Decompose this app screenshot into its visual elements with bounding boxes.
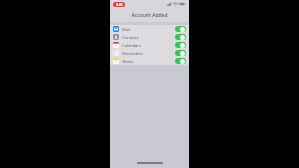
staticText: Account Added [131, 12, 168, 19]
button[interactable]: Contacts [110, 33, 189, 41]
button[interactable]: Notes [110, 57, 189, 65]
button[interactable]: Reminders [110, 49, 189, 57]
button[interactable]: Toggle on [175, 58, 186, 64]
staticText: Calendars [122, 43, 141, 48]
button[interactable]: Toggle on [175, 50, 186, 56]
staticText: Notes [122, 59, 134, 64]
button[interactable]: Recording timer [113, 2, 125, 7]
button[interactable]: Mail [110, 25, 189, 33]
button[interactable]: Toggle on [175, 26, 186, 32]
staticText: Reminders [122, 51, 143, 56]
button[interactable]: Calendars [110, 41, 189, 49]
staticText: 0:05 [116, 3, 123, 7]
button[interactable]: Toggle on [175, 34, 186, 40]
staticText: Mail [122, 27, 130, 32]
staticText: Contacts [122, 35, 139, 40]
button[interactable]: Toggle on [175, 42, 186, 48]
